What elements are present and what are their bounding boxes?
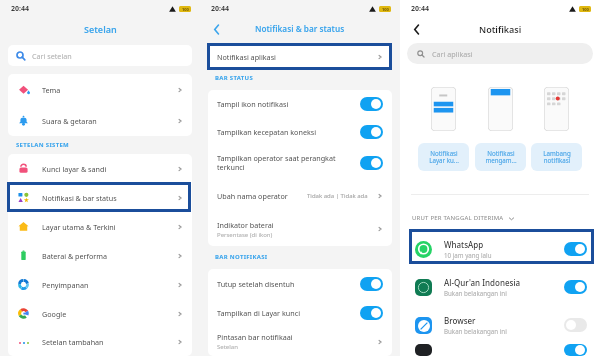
staticText: Baterai & performa (42, 251, 108, 261)
button[interactable]: Enabled (564, 280, 587, 294)
staticText: 20:44 (411, 4, 429, 14)
button[interactable]: Pintasan bar notifikaai (208, 327, 392, 356)
button[interactable]: Enabled (360, 306, 383, 320)
button[interactable]: Disabled (564, 318, 587, 332)
staticText: WhatsApp (444, 239, 484, 250)
button[interactable]: Back (209, 22, 223, 36)
staticText: Pintasan bar notifikaai (217, 332, 293, 342)
button[interactable]: Ubah nama operator (208, 180, 392, 212)
staticText: Browser (444, 315, 476, 326)
button[interactable]: Tampilkan operator saat perangkat terkun… (208, 146, 392, 180)
button[interactable]: Kunci layar & sandi (8, 154, 192, 183)
button[interactable]: Layar utama & Terkini (8, 212, 192, 241)
staticText: BAR STATUS (215, 74, 254, 82)
staticText: 20:44 (211, 4, 229, 14)
staticText: URUT PER TANGGAL DITERIMA (412, 214, 504, 222)
button[interactable]: WhatsApp (400, 230, 600, 268)
staticText: Notifikasi (479, 23, 522, 35)
button[interactable]: Back (409, 22, 423, 36)
button[interactable]: Enabled (564, 242, 587, 256)
button[interactable]: Notifikasi mengam... (475, 87, 526, 171)
staticText: Setelan tambahan (42, 337, 104, 347)
staticText: 100 (382, 7, 389, 12)
staticText: SETELAN SISTEM (16, 141, 70, 149)
staticText: Bukan belakangan ini (444, 289, 507, 297)
button[interactable]: Notifikasi Layar ku... (418, 87, 469, 171)
staticText: Notifikasi Layar ku... (429, 149, 459, 165)
staticText: Notifikasi aplikasi (217, 52, 276, 62)
button[interactable]: Penyimpanan (8, 270, 192, 299)
staticText: Notifikasi mengam... (485, 149, 517, 165)
staticText: Tutup setelah disentuh (217, 279, 352, 289)
staticText: Persentase (di ikon) (217, 231, 273, 239)
button[interactable]: Cari setelan (8, 45, 192, 66)
button[interactable]: Enabled (360, 277, 383, 291)
staticText: Setelan (217, 343, 238, 351)
staticText: Tampilkan di Layar kunci (217, 308, 352, 318)
button[interactable]: Tampilkan di Layar kunci (208, 298, 392, 327)
staticText: Kunci layar & sandi (42, 164, 107, 174)
staticText: Setelan (84, 23, 117, 35)
button[interactable]: Suara & getaran (8, 105, 192, 136)
button[interactable]: Baterai & performa (8, 241, 192, 270)
button[interactable]: Enabled (400, 344, 600, 356)
staticText: Tampilkan kecepatan koneksi (217, 127, 352, 137)
staticText: Cari aplikasi (432, 49, 473, 59)
button[interactable]: Lambang notifikasi (531, 87, 582, 171)
button[interactable]: Notifikasi aplikasi (208, 45, 392, 68)
button[interactable]: Indikator baterai (208, 212, 392, 246)
button[interactable]: Enabled (360, 125, 383, 139)
staticText: Penyimpanan (42, 280, 89, 290)
staticText: Al-Qur'an Indonesia (444, 277, 521, 288)
button[interactable]: Tutup setelah disentuh (208, 269, 392, 298)
staticText: Suara & getaran (42, 116, 97, 126)
staticText: Tampilkan operator saat perangkat terkun… (217, 153, 352, 173)
staticText: 100 (582, 7, 589, 12)
button[interactable]: Tampil ikon notifikasi (208, 90, 392, 118)
staticText: Cari setelan (32, 51, 72, 61)
staticText: 20:44 (11, 4, 29, 14)
staticText: Ubah nama operator (217, 191, 288, 201)
staticText: Bukan belakangan ini (444, 327, 507, 335)
staticText: Notifikasi & bar status (255, 23, 345, 34)
button[interactable]: Cari aplikasi (407, 43, 593, 64)
button[interactable]: Tema (8, 74, 192, 105)
button[interactable]: Browser (400, 306, 600, 344)
button[interactable]: Setelan tambahan (8, 328, 192, 356)
staticText: Google (42, 309, 67, 319)
button[interactable]: Notifikasi & bar status (8, 183, 192, 212)
button[interactable]: Enabled (360, 97, 383, 111)
button[interactable]: Google (8, 299, 192, 328)
staticText: BAR NOTIFIKASI (215, 253, 268, 261)
staticText: Lambang notifikasi (543, 149, 571, 165)
button[interactable]: Enabled (360, 156, 383, 170)
staticText: Tema (42, 85, 61, 95)
staticText: Notifikasi & bar status (42, 193, 117, 203)
staticText: Indikator baterai (217, 220, 274, 230)
button[interactable]: Enabled (564, 344, 587, 356)
staticText: Tampil ikon notifikasi (217, 99, 352, 109)
staticText: 100 (182, 7, 189, 12)
button[interactable]: Tampilkan kecepatan koneksi (208, 118, 392, 146)
staticText: 10 jam yang lalu (444, 251, 492, 259)
staticText: Layar utama & Terkini (42, 222, 116, 232)
button[interactable]: Al-Qur'an Indonesia (400, 268, 600, 306)
staticText: Tidak ada | Tidak ada (307, 192, 368, 200)
